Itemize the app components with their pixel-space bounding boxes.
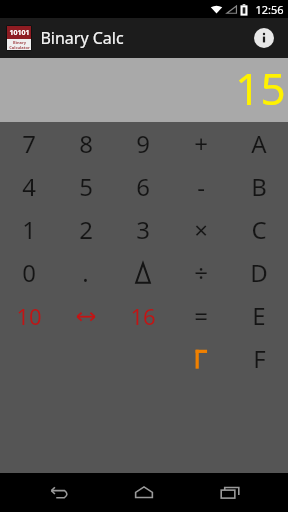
staticText: 10 <box>16 301 42 331</box>
button[interactable]: 3 <box>114 208 172 251</box>
button[interactable]: 9 <box>114 122 172 165</box>
button[interactable]: Home <box>116 473 172 512</box>
staticText: D <box>250 256 268 289</box>
staticText: 0 <box>22 256 36 289</box>
button[interactable]: 8 <box>57 122 114 165</box>
staticText: 8 <box>79 127 93 160</box>
button[interactable]: 16 <box>114 294 172 337</box>
staticText: 7 <box>22 127 36 160</box>
staticText: C <box>251 213 267 246</box>
button[interactable]: Delta <box>114 251 172 294</box>
staticText: 5 <box>79 170 93 203</box>
button[interactable]: 15 <box>0 58 288 122</box>
staticText: 9 <box>136 127 150 160</box>
button[interactable]: A <box>230 122 288 165</box>
staticText: 3 <box>136 213 150 246</box>
staticText: 4 <box>22 170 36 203</box>
button[interactable]: 5 <box>57 165 114 208</box>
button[interactable]: Swap bases <box>57 294 114 337</box>
button[interactable]: + <box>172 122 230 165</box>
button[interactable]: 7 <box>0 122 57 165</box>
button[interactable]: 0 <box>0 251 57 294</box>
button[interactable]: B <box>230 165 288 208</box>
staticText: + <box>194 127 208 160</box>
staticText: 1 <box>22 213 36 246</box>
staticText: Binary Calc <box>40 27 124 49</box>
button[interactable]: Back <box>30 473 86 512</box>
staticText: - <box>197 170 205 203</box>
staticText: 10101 <box>9 28 30 38</box>
button[interactable]: D <box>230 251 288 294</box>
staticText: 6 <box>136 170 150 203</box>
button[interactable]: E <box>230 294 288 337</box>
button[interactable]: Binary Calc <box>7 26 31 50</box>
button[interactable]: 2 <box>57 208 114 251</box>
staticText: Calculator <box>9 45 30 50</box>
button[interactable]: C <box>230 208 288 251</box>
button[interactable]: Recents <box>202 473 258 512</box>
staticText: Binary <box>13 40 26 45</box>
staticText: 16 <box>130 301 156 331</box>
staticText: A <box>251 127 267 160</box>
button[interactable]: - <box>172 165 230 208</box>
staticText: ÷ <box>194 256 208 289</box>
staticText: 12:56 <box>255 2 284 17</box>
button[interactable]: × <box>172 208 230 251</box>
staticText: . <box>82 256 89 289</box>
staticText: B <box>251 170 267 203</box>
staticText: 2 <box>79 213 93 246</box>
button[interactable]: Gamma <box>172 337 230 380</box>
button[interactable]: 10 <box>0 294 57 337</box>
button[interactable]: 1 <box>0 208 57 251</box>
button[interactable]: 6 <box>114 165 172 208</box>
staticText: F <box>253 342 266 375</box>
button[interactable]: Info <box>248 22 280 54</box>
staticText: E <box>252 299 266 332</box>
button[interactable]: 4 <box>0 165 57 208</box>
button[interactable]: F <box>230 337 288 380</box>
button[interactable]: = <box>172 294 230 337</box>
staticText: 15 <box>235 58 286 118</box>
button[interactable]: ÷ <box>172 251 230 294</box>
staticText: = <box>194 299 208 332</box>
staticText: × <box>194 213 208 246</box>
